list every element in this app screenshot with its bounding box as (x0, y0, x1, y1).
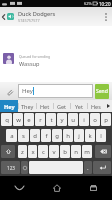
button[interactable]: Yet (70, 100, 87, 112)
button[interactable]: Get (53, 100, 70, 112)
button[interactable]: s (18, 129, 29, 142)
staticText: k (88, 132, 92, 140)
button[interactable]: Attach (0, 82, 18, 100)
staticText: i (83, 116, 85, 124)
button[interactable]: w (13, 113, 23, 126)
button[interactable]: n (71, 145, 81, 158)
staticText: q (5, 116, 9, 124)
staticText: d (33, 132, 37, 140)
button[interactable]: Home (38, 176, 75, 200)
staticText: c (42, 148, 45, 156)
staticText: They (21, 103, 34, 110)
staticText: 5745757577 (18, 18, 40, 23)
button[interactable]: Period (84, 161, 92, 174)
button[interactable]: h (63, 129, 73, 142)
button[interactable]: p (101, 113, 111, 126)
staticText: n (74, 148, 78, 156)
button[interactable]: g (52, 129, 62, 142)
staticText: 62% (84, 1, 92, 6)
button[interactable]: Emoji (21, 161, 28, 174)
staticText: f (45, 132, 48, 140)
staticText: Queued for sending (19, 54, 51, 58)
staticText: s (22, 132, 25, 140)
button[interactable]: a (6, 129, 17, 142)
button[interactable]: Shift (1, 145, 15, 158)
button[interactable]: c (38, 145, 48, 158)
staticText: e (27, 116, 31, 124)
staticText: v (52, 148, 56, 156)
staticText: Send (96, 88, 108, 95)
button[interactable] (29, 161, 83, 174)
staticText: z (21, 148, 24, 156)
staticText: Het (40, 103, 50, 110)
button[interactable]: Backspace (95, 145, 111, 158)
staticText: Hey (4, 103, 15, 110)
staticText: Duck Dodgers (18, 10, 56, 18)
staticText: h (66, 132, 70, 140)
staticText: u (71, 116, 75, 124)
staticText: 123 (7, 165, 15, 171)
staticText: y (60, 116, 64, 124)
staticText: b (63, 148, 67, 156)
button[interactable]: i (79, 113, 89, 126)
button[interactable]: Het (36, 100, 53, 112)
button[interactable]: Hes (87, 100, 104, 112)
button[interactable]: e (24, 113, 34, 126)
button[interactable]: Queued for sending (3, 53, 112, 68)
button[interactable]: t (46, 113, 56, 126)
button[interactable]: Back (0, 7, 15, 26)
staticText: 10:20 (99, 1, 111, 7)
staticText: Wassup (19, 60, 40, 68)
staticText: t (50, 116, 53, 124)
button[interactable]: Send (95, 84, 109, 99)
button[interactable]: v (49, 145, 59, 158)
button[interactable]: z (18, 145, 27, 158)
staticText: Hey (22, 87, 33, 95)
button[interactable]: More options (100, 7, 112, 26)
staticText: p (104, 116, 108, 124)
button[interactable]: Numbers and symbols (1, 161, 20, 174)
staticText: x (31, 148, 35, 156)
button[interactable]: More suggestions (104, 100, 112, 112)
button[interactable]: Enter (93, 161, 111, 174)
staticText: g (55, 132, 59, 140)
button[interactable]: m (82, 145, 92, 158)
staticText: Hes (91, 103, 101, 110)
staticText: w (16, 116, 21, 124)
staticText: o (93, 116, 97, 124)
staticText: . (87, 164, 89, 172)
button[interactable]: x (28, 145, 37, 158)
button[interactable]: j (74, 129, 84, 142)
staticText: Get (57, 103, 67, 110)
button[interactable]: l (96, 129, 106, 142)
staticText: Yet (75, 103, 83, 110)
button[interactable]: Hey (19, 85, 92, 97)
button[interactable]: Recent apps (75, 176, 112, 200)
button[interactable]: They (18, 100, 36, 112)
button[interactable]: b (60, 145, 70, 158)
button[interactable]: r (35, 113, 45, 126)
button[interactable]: Hey (0, 100, 18, 112)
button[interactable]: k (85, 129, 95, 142)
staticText: j (78, 132, 80, 140)
button[interactable]: d (30, 129, 40, 142)
button[interactable]: o (90, 113, 100, 126)
button[interactable]: u (68, 113, 78, 126)
button[interactable]: q (1, 113, 12, 126)
staticText: r (39, 116, 42, 124)
staticText: a (10, 132, 14, 140)
button[interactable]: y (57, 113, 67, 126)
staticText: m (84, 148, 90, 156)
staticText: l (100, 132, 102, 140)
button[interactable]: Back (0, 176, 38, 200)
button[interactable]: f (41, 129, 51, 142)
